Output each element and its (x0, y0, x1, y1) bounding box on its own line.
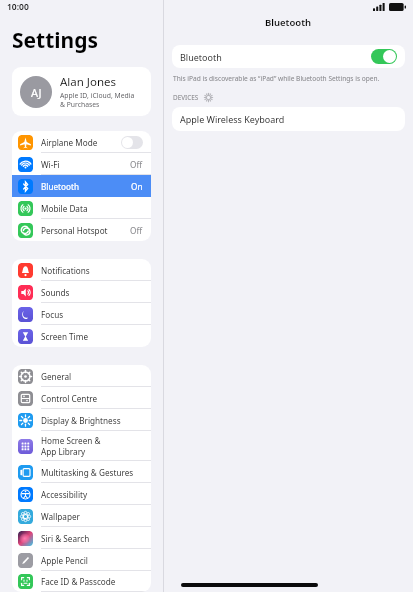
button[interactable]: Siri & Search (12, 527, 151, 549)
staticText: Bluetooth (180, 51, 222, 63)
staticText: Airplane Mode (41, 137, 98, 148)
staticText: Focus (41, 309, 64, 320)
button[interactable]: Bluetooth (12, 175, 151, 197)
staticText: Apple Pencil (41, 555, 88, 566)
staticText: 10:00 (7, 1, 29, 13)
button[interactable]: Wi-Fi (12, 153, 151, 175)
button[interactable]: Screen Time (12, 325, 151, 347)
staticText: Apple Wireless Keyboard (180, 113, 285, 125)
button[interactable]: Display & Brightness (12, 409, 151, 431)
button[interactable]: General (12, 365, 151, 387)
staticText: This iPad is discoverable as “iPad” whil… (173, 74, 380, 83)
staticText: Apple ID, iCloud, Media (60, 91, 135, 100)
button[interactable]: Apple Wireless Keyboard (172, 107, 405, 131)
button[interactable]: AJ (12, 67, 151, 116)
button[interactable]: Airplane Mode (12, 131, 151, 153)
button[interactable]: Wallpaper (12, 505, 151, 527)
staticText: Siri & Search (41, 533, 90, 544)
button[interactable]: Bluetooth toggle (371, 49, 397, 64)
staticText: Off (130, 159, 143, 170)
staticText: Alan Jones (60, 74, 117, 90)
button[interactable]: Face ID & Passcode (12, 571, 151, 592)
staticText: Off (130, 225, 143, 236)
button[interactable]: Bluetooth (172, 45, 405, 68)
button[interactable]: Mobile Data (12, 197, 151, 219)
staticText: Wallpaper (41, 511, 80, 522)
staticText: Accessibility (41, 489, 88, 500)
staticText: Display & Brightness (41, 415, 121, 426)
staticText: Home Screen & (41, 435, 101, 446)
button[interactable]: Airplane Mode toggle (121, 136, 143, 149)
button[interactable]: Focus (12, 303, 151, 325)
button[interactable]: Personal Hotspot (12, 219, 151, 241)
staticText: General (41, 371, 72, 382)
staticText: On (131, 181, 143, 192)
staticText: & Purchases (60, 100, 100, 109)
staticText: Settings (12, 26, 99, 55)
button[interactable]: Apple Pencil (12, 549, 151, 571)
staticText: Screen Time (41, 331, 89, 342)
staticText: Face ID & Passcode (41, 576, 116, 587)
staticText: AJ (31, 85, 42, 100)
staticText: Bluetooth (265, 16, 312, 29)
staticText: Wi-Fi (41, 159, 60, 170)
staticText: Mobile Data (41, 203, 88, 214)
staticText: Sounds (41, 287, 70, 298)
staticText: Bluetooth (41, 181, 79, 192)
button[interactable]: Notifications (12, 259, 151, 281)
staticText: Control Centre (41, 393, 98, 404)
staticText: Personal Hotspot (41, 225, 108, 236)
button[interactable]: Multitasking & Gestures (12, 461, 151, 483)
staticText: DEVICES (173, 93, 199, 102)
button[interactable]: Control Centre (12, 387, 151, 409)
button[interactable]: Accessibility (12, 483, 151, 505)
staticText: App Library (41, 446, 86, 457)
button[interactable]: Sounds (12, 281, 151, 303)
button[interactable]: Home Screen & (12, 431, 151, 461)
staticText: Notifications (41, 265, 90, 276)
staticText: Multitasking & Gestures (41, 467, 134, 478)
